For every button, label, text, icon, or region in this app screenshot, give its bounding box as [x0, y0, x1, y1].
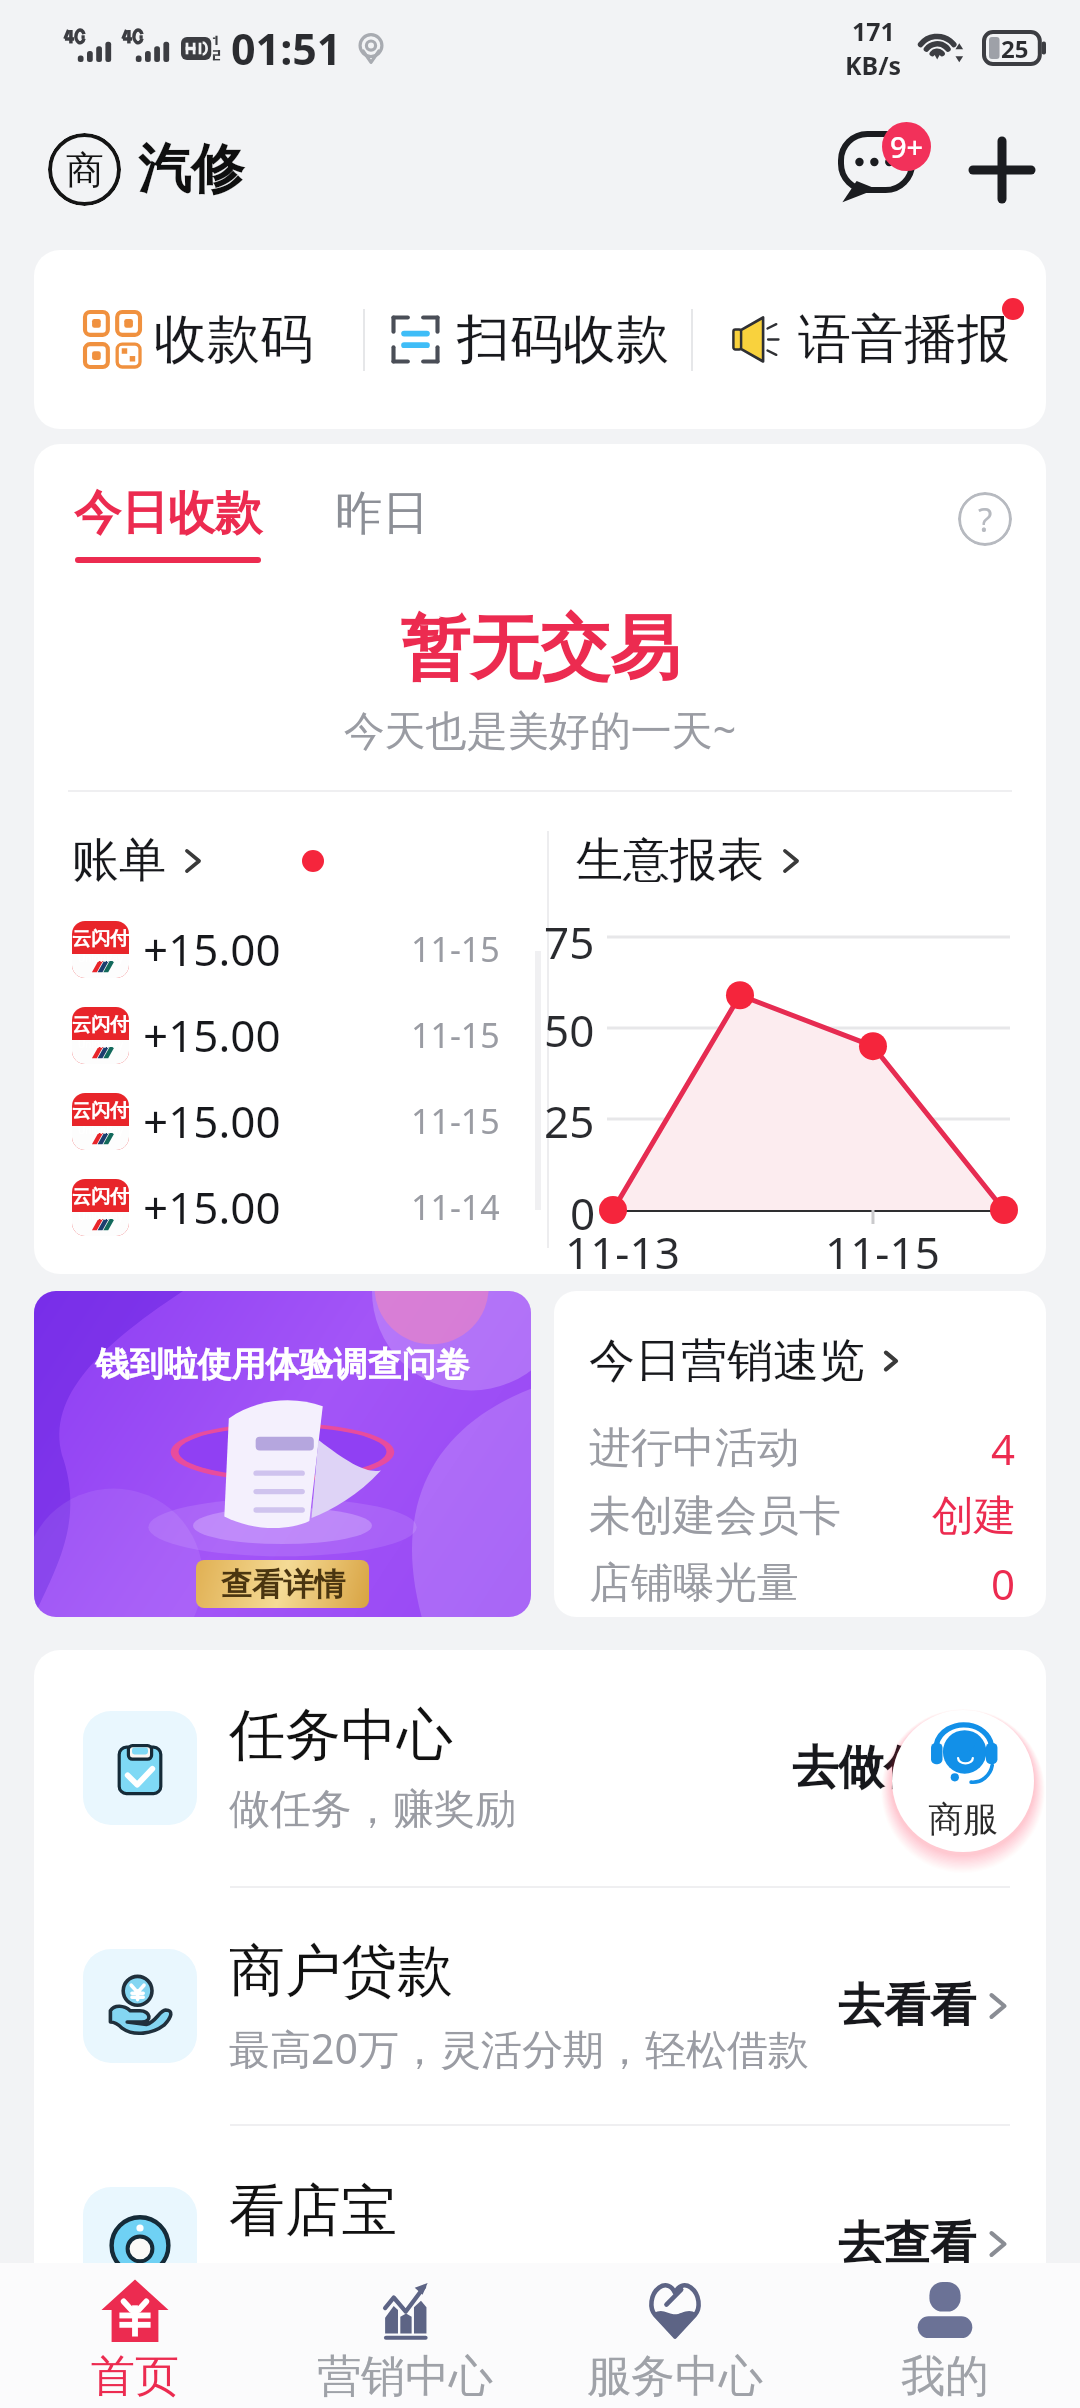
staticText: 店铺曝光量	[589, 1557, 799, 1610]
staticText: 今日营销速览	[589, 1332, 865, 1390]
button[interactable]: 收款码	[34, 250, 363, 429]
staticText: UnionPay	[78, 1037, 124, 1051]
staticText: 收款码	[154, 306, 313, 373]
staticText: 25	[544, 1091, 595, 1151]
staticText: 11-15	[411, 1098, 500, 1144]
staticText: 0	[991, 1555, 1016, 1612]
button[interactable]: 商户贷款	[34, 1888, 1046, 2124]
staticText: 我的	[901, 2349, 989, 2404]
staticText: 4	[991, 1420, 1016, 1477]
staticText: 50	[544, 1000, 595, 1060]
staticText: 未创建会员卡	[589, 1490, 841, 1543]
staticText: 看店宝	[229, 2176, 397, 2247]
staticText: 去看看	[838, 1977, 976, 2035]
button[interactable]: 昨日	[335, 484, 429, 543]
staticText: +15.00	[143, 1177, 281, 1237]
staticText: 11-15	[411, 1012, 500, 1058]
button[interactable]: 钱到啦使用体验调查问卷	[34, 1291, 531, 1617]
button[interactable]: 生意报表	[576, 831, 808, 890]
button[interactable]: 账单	[72, 831, 324, 890]
button[interactable]: 营销中心	[270, 2263, 540, 2408]
staticText: UnionPay	[78, 1209, 124, 1223]
staticText: UnionPay	[78, 951, 124, 965]
staticText: 汽修	[138, 136, 244, 203]
staticText: ?	[978, 497, 993, 542]
staticText: KB/s	[845, 48, 902, 82]
staticText: 商户贷款	[229, 1936, 453, 2007]
staticText: 75	[544, 912, 595, 972]
staticText: 营销中心	[317, 2349, 493, 2404]
staticText: 商	[66, 146, 104, 194]
staticText: 171	[852, 14, 895, 48]
button[interactable]: 扫码收款	[365, 250, 691, 429]
staticText: 智能看店，安防无忧	[229, 2260, 598, 2312]
staticText: 进行中活动	[589, 1422, 799, 1475]
staticText: 云闪付	[72, 1099, 129, 1123]
staticText: 去做任务	[792, 1739, 976, 1797]
staticText: 11-15	[825, 1222, 940, 1274]
button[interactable]: 服务中心	[540, 2263, 810, 2408]
staticText: 扫码收款	[457, 306, 669, 373]
staticText: 做任务，赚奖励	[229, 1784, 516, 1836]
button[interactable]: 看店宝	[34, 2126, 1046, 2362]
button[interactable]: 今日营销速览	[554, 1291, 1046, 1617]
staticText: 11-15	[411, 926, 500, 972]
staticText: 云闪付	[72, 927, 129, 951]
staticText: 9+	[890, 127, 924, 166]
button[interactable]: Add	[960, 128, 1044, 212]
staticText: 服务中心	[587, 2349, 763, 2404]
staticText: 查看详情	[221, 1565, 345, 1604]
staticText: 今日收款	[74, 484, 262, 543]
button[interactable]: Messages	[822, 120, 931, 220]
staticText: 账单	[72, 831, 166, 890]
staticText: 钱到啦使用体验调查问卷	[34, 1343, 531, 1386]
staticText: 商服	[928, 1797, 998, 1841]
staticText: 25	[1001, 32, 1029, 64]
staticText: 首页	[91, 2349, 179, 2404]
staticText: 云闪付	[72, 1185, 129, 1209]
button[interactable]: 任务中心	[34, 1650, 1046, 1886]
staticText: 语音播报	[798, 306, 1010, 373]
staticText: 01:51	[231, 19, 342, 78]
button[interactable]: Help	[958, 492, 1012, 546]
button[interactable]: 语音播报	[693, 250, 1046, 429]
staticText: 昨日	[335, 484, 429, 543]
staticText: 去查看	[838, 2215, 976, 2273]
button[interactable]: 今日收款	[74, 484, 262, 563]
staticText: +15.00	[143, 919, 281, 979]
button[interactable]: 我的	[810, 2263, 1080, 2408]
staticText: 创建	[932, 1490, 1016, 1543]
staticText: 云闪付	[72, 1013, 129, 1037]
staticText: +15.00	[143, 1005, 281, 1065]
staticText: 生意报表	[576, 831, 764, 890]
staticText: 11-13	[565, 1222, 680, 1274]
staticText: 暂无交易	[34, 605, 1046, 693]
staticText: UnionPay	[78, 1123, 124, 1137]
button[interactable]: Customer service	[881, 1702, 1045, 1866]
staticText: 11-14	[411, 1184, 500, 1230]
staticText: 最高20万，灵活分期，轻松借款	[229, 2020, 809, 2076]
staticText: 任务中心	[229, 1700, 453, 1771]
button[interactable]: 首页	[0, 2263, 270, 2408]
staticText: 0	[570, 1183, 596, 1243]
staticText: 今天也是美好的一天~	[34, 701, 1046, 757]
staticText: +15.00	[143, 1091, 281, 1151]
